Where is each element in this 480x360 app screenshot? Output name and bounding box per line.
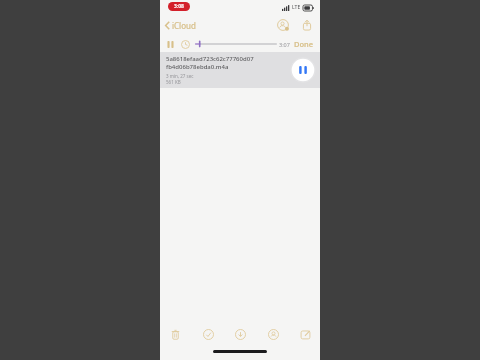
button[interactable]: Share with people bbox=[275, 17, 291, 33]
button[interactable]: Pause bbox=[165, 39, 176, 50]
button[interactable]: Delete bbox=[167, 326, 183, 342]
staticText: Done bbox=[294, 39, 314, 49]
staticText: fb4d06b78ebda0.m4a bbox=[166, 63, 229, 71]
button[interactable]: Compose bbox=[297, 326, 313, 342]
staticText: 5a8618efaad723c62c77760d07 bbox=[166, 55, 254, 63]
button[interactable]: 5a8618efaad723c62c77760d07 bbox=[160, 52, 320, 88]
button[interactable]: Playback position bbox=[196, 39, 276, 49]
staticText: iCloud bbox=[172, 20, 196, 31]
staticText: 561 KB bbox=[166, 79, 181, 85]
button[interactable]: Download bbox=[232, 326, 248, 342]
staticText: 3:08 bbox=[174, 3, 184, 10]
staticText: 3 min, 27 sec bbox=[166, 73, 194, 79]
button[interactable]: Share bbox=[299, 17, 315, 33]
button[interactable]: Account bbox=[265, 326, 281, 342]
staticText: LTE bbox=[292, 4, 301, 11]
button[interactable]: Mark complete bbox=[200, 326, 216, 342]
button[interactable]: Playback speed bbox=[180, 39, 191, 50]
button[interactable]: Pause playback bbox=[290, 57, 316, 83]
button[interactable]: Done bbox=[293, 37, 315, 51]
button[interactable]: iCloud bbox=[163, 17, 198, 34]
staticText: 3:07 bbox=[279, 41, 290, 48]
